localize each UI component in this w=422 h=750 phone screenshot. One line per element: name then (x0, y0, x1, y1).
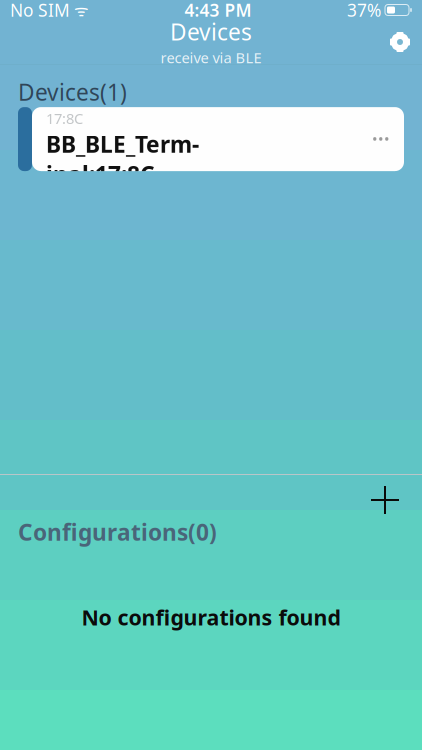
staticText: BB_BLE_Terminal:17:8C (46, 89, 170, 128)
button[interactable]: Settings (378, 20, 422, 64)
staticText: ••• (372, 129, 390, 149)
button[interactable]: BB_BLE_Terminal:17:8C (0, 107, 422, 171)
staticText: ᯤ (70, 0, 89, 21)
staticText: Devices (170, 17, 252, 47)
button[interactable]: Add configuration (360, 475, 410, 525)
staticText: receive via BLE (160, 48, 261, 67)
staticText: No configurations found (81, 603, 340, 631)
staticText: BB_BLE_Terminal:17:8C (46, 129, 199, 189)
staticText: Configurations(0) (18, 517, 217, 547)
staticText: 37% (347, 0, 381, 21)
staticText: 4:43 PM (184, 0, 251, 21)
staticText: No SIM (10, 0, 70, 21)
staticText: Devices(1) (18, 77, 127, 107)
